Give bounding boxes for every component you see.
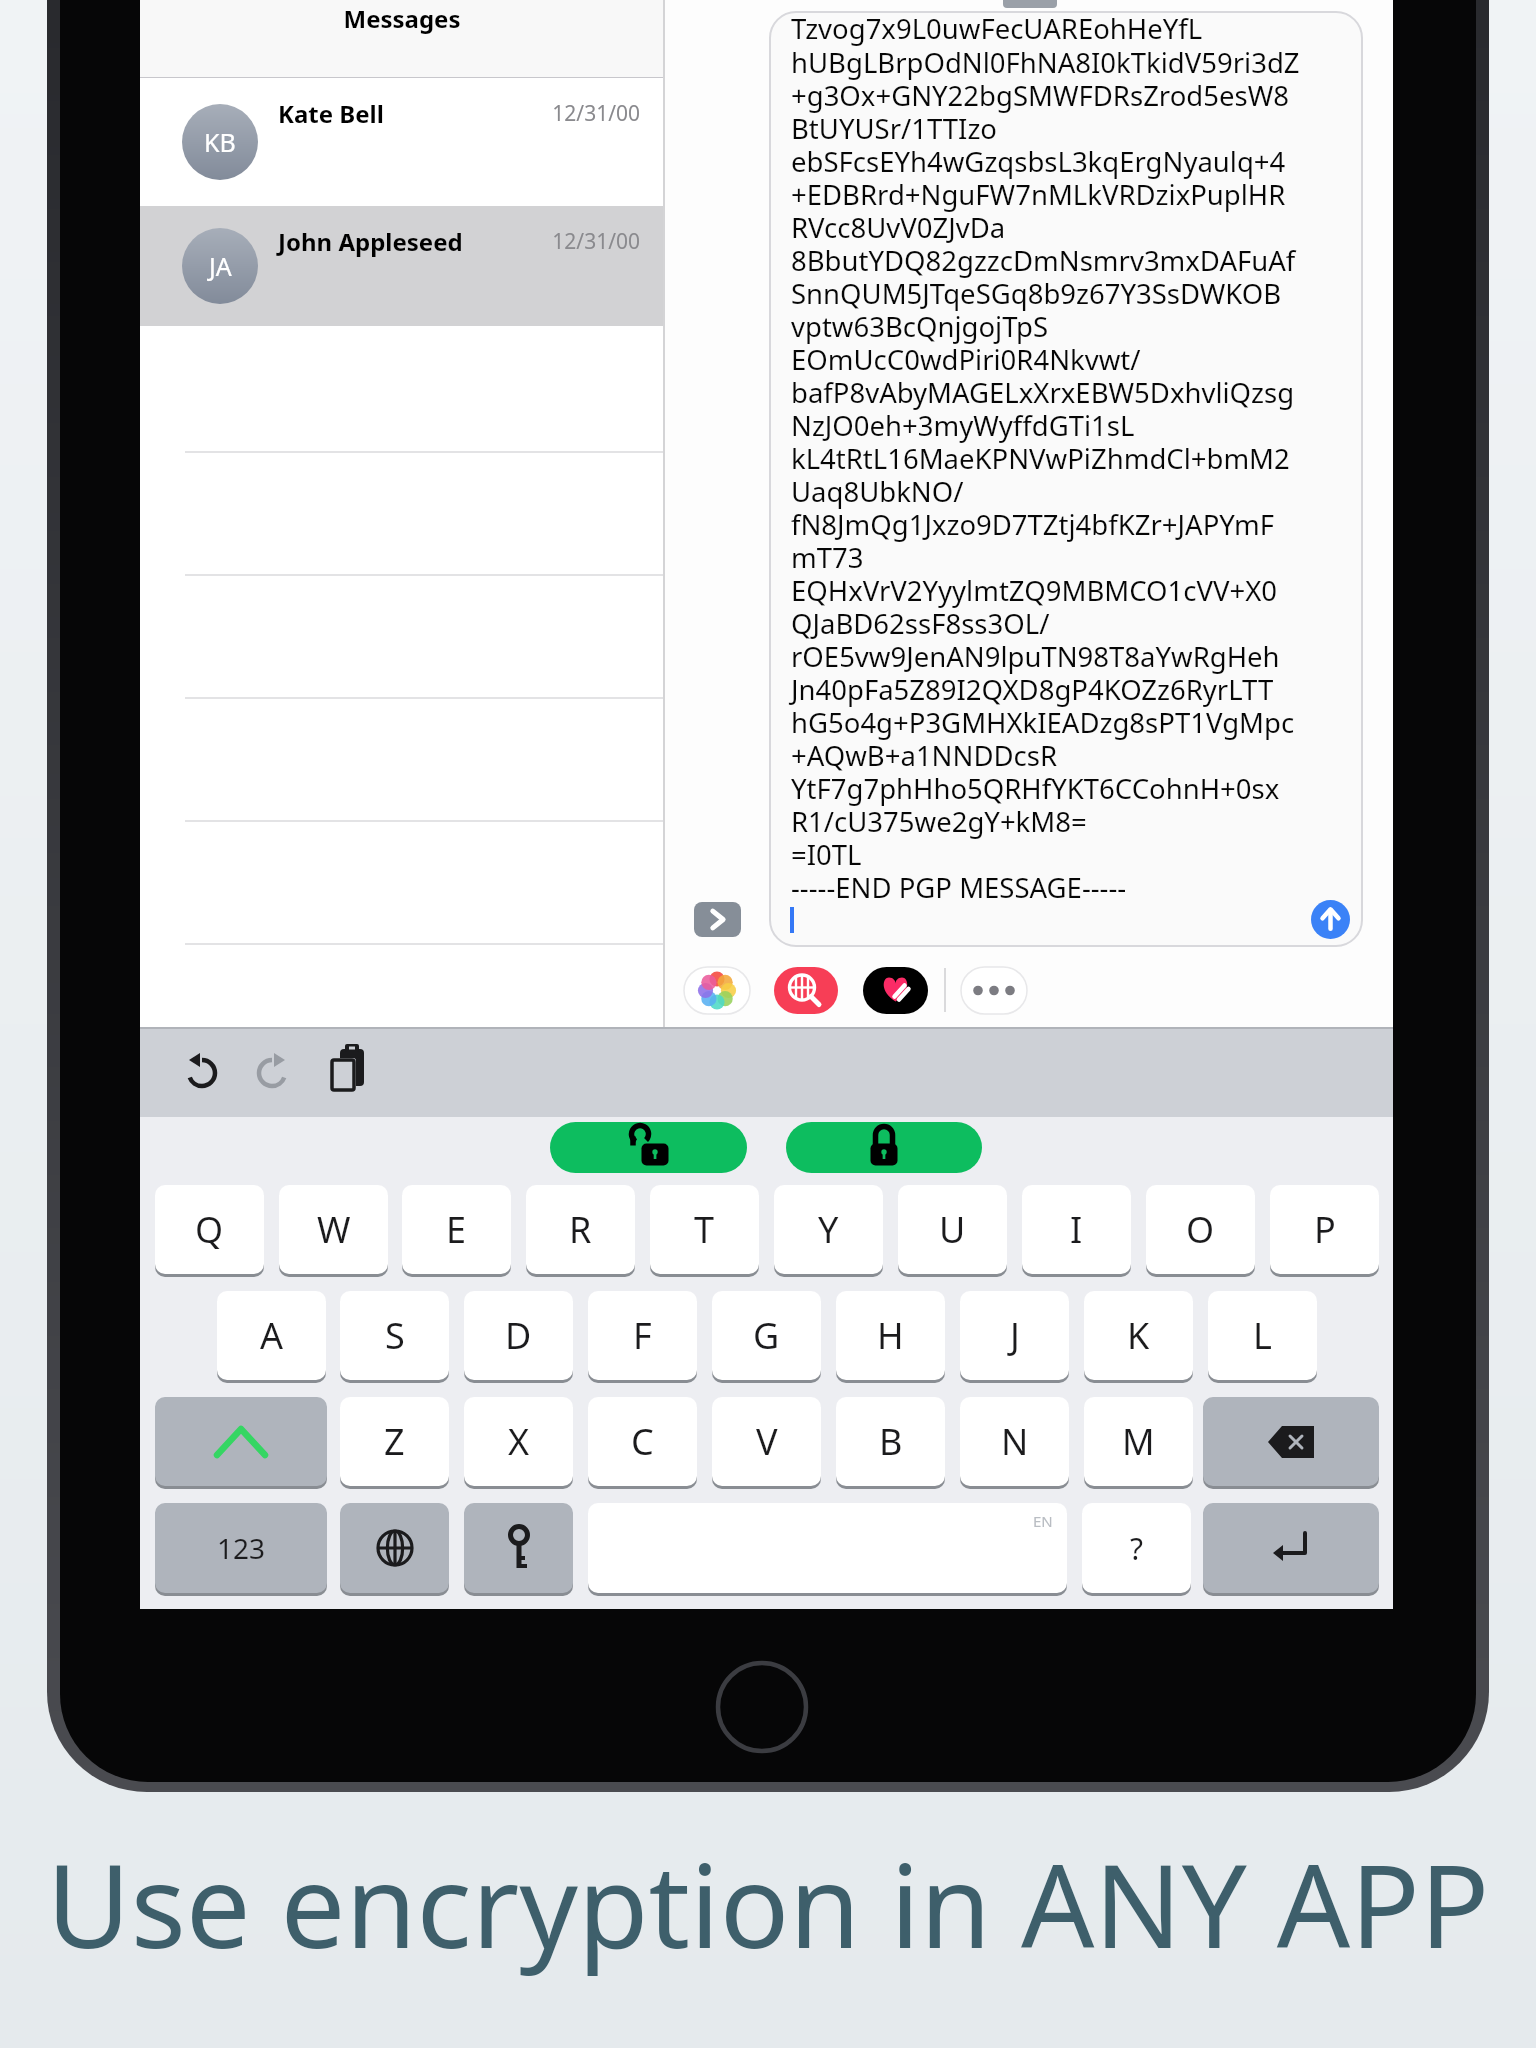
staticText: G	[753, 1311, 780, 1360]
staticText: X	[508, 1417, 530, 1466]
button[interactable]	[464, 1503, 573, 1593]
button[interactable]: 123	[155, 1503, 327, 1593]
button[interactable]	[863, 967, 928, 1014]
button[interactable]: EN	[588, 1503, 1067, 1593]
button[interactable]: W	[279, 1185, 388, 1274]
staticText: M	[1122, 1417, 1155, 1466]
staticText: K	[1127, 1311, 1150, 1360]
button[interactable]: I	[1022, 1185, 1131, 1274]
button[interactable]	[1311, 900, 1350, 939]
staticText: Kate Bell	[278, 97, 384, 130]
staticText: Q	[195, 1205, 224, 1254]
staticText: E	[446, 1205, 467, 1254]
button[interactable]: K	[1084, 1291, 1193, 1380]
button[interactable]	[1203, 1397, 1379, 1486]
staticText: S	[385, 1311, 405, 1360]
staticText: D	[505, 1311, 532, 1360]
staticText: 12/31/00	[480, 99, 640, 129]
staticText: ?	[1130, 1528, 1144, 1569]
staticText: F	[633, 1311, 652, 1360]
button[interactable]: J	[960, 1291, 1069, 1380]
staticText: P	[1314, 1205, 1336, 1254]
staticText: John Appleseed	[278, 225, 463, 258]
button[interactable]	[694, 902, 741, 937]
button[interactable]: V	[712, 1397, 821, 1486]
button[interactable]	[178, 1049, 222, 1093]
button[interactable]	[786, 1122, 982, 1173]
button[interactable]	[716, 1661, 808, 1753]
button[interactable]: S	[340, 1291, 449, 1380]
button[interactable]: T	[650, 1185, 759, 1274]
staticText: R	[569, 1205, 592, 1254]
staticText: JA	[209, 249, 232, 283]
button[interactable]: D	[464, 1291, 573, 1380]
button[interactable]: U	[898, 1185, 1007, 1274]
staticText: B	[879, 1417, 903, 1466]
staticText: U	[939, 1205, 966, 1254]
button[interactable]: X	[464, 1397, 573, 1486]
staticText: H	[877, 1311, 904, 1360]
button[interactable]	[252, 1049, 296, 1093]
staticText: O	[1186, 1205, 1215, 1254]
staticText: 12/31/00	[480, 227, 640, 257]
button[interactable]: Y	[774, 1185, 883, 1274]
button[interactable]	[774, 967, 838, 1014]
button[interactable]: B	[836, 1397, 945, 1486]
button[interactable]: Q	[155, 1185, 264, 1274]
button[interactable]	[340, 1503, 449, 1593]
button[interactable]	[1203, 1503, 1379, 1593]
staticText: KB	[204, 125, 236, 159]
button[interactable]	[140, 206, 664, 326]
staticText: Tzvog7x9L0uwFecUAREohHeYfL hUBgLBrpOdNl0…	[791, 10, 1357, 940]
button[interactable]: Z	[340, 1397, 449, 1486]
staticText: I	[1070, 1205, 1083, 1254]
button[interactable]: N	[960, 1397, 1069, 1486]
button[interactable]: A	[217, 1291, 326, 1380]
button[interactable]: H	[836, 1291, 945, 1380]
button[interactable]: ?	[1082, 1503, 1191, 1593]
staticText: Messages	[140, 2, 664, 42]
staticText: EN	[1033, 1511, 1053, 1531]
button[interactable]: F	[588, 1291, 697, 1380]
button[interactable]: M	[1084, 1397, 1193, 1486]
button[interactable]	[684, 967, 750, 1014]
staticText: 123	[217, 1529, 266, 1567]
button[interactable]: R	[526, 1185, 635, 1274]
button[interactable]: L	[1208, 1291, 1317, 1380]
staticText: Y	[818, 1205, 839, 1254]
staticText: L	[1253, 1311, 1272, 1360]
staticText: Use encryption in ANY APP	[0, 1825, 1536, 2025]
staticText: Z	[384, 1417, 405, 1466]
staticText: W	[317, 1205, 351, 1254]
button[interactable]	[550, 1122, 747, 1173]
staticText: N	[1001, 1417, 1029, 1466]
button[interactable]: G	[712, 1291, 821, 1380]
button[interactable]: P	[1270, 1185, 1379, 1274]
staticText: C	[631, 1417, 654, 1466]
staticText: A	[260, 1311, 284, 1360]
button[interactable]	[140, 78, 664, 206]
button[interactable]	[961, 967, 1027, 1014]
staticText: V	[756, 1417, 778, 1466]
staticText: T	[694, 1205, 715, 1254]
button[interactable]: E	[402, 1185, 511, 1274]
button[interactable]	[155, 1397, 327, 1486]
staticText: J	[1010, 1311, 1020, 1360]
button[interactable]: C	[588, 1397, 697, 1486]
button[interactable]	[328, 1044, 372, 1096]
button[interactable]: O	[1146, 1185, 1255, 1274]
